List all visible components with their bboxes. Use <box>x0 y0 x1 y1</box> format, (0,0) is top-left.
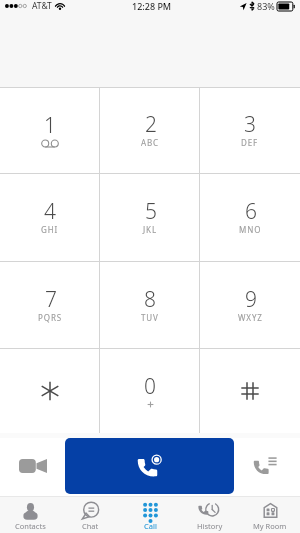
staticText: MNO <box>239 224 262 235</box>
button[interactable]: 3 <box>200 87 300 173</box>
button[interactable]: Contacts <box>0 497 60 533</box>
button[interactable]: Call <box>120 497 180 533</box>
staticText: JKL <box>143 224 158 235</box>
staticText: TUV <box>141 312 159 323</box>
button[interactable]: 4 <box>0 173 100 261</box>
button[interactable]: Call <box>65 438 234 494</box>
staticText: 12:28 PM <box>132 0 172 12</box>
button[interactable]: 2 <box>100 87 200 173</box>
button[interactable]: Chat <box>60 497 120 533</box>
staticText: History <box>197 521 223 531</box>
staticText: 4 <box>44 197 56 226</box>
staticText: Contacts <box>15 521 46 531</box>
button[interactable]: 9 <box>200 261 300 348</box>
staticText: 6 <box>245 197 257 226</box>
button[interactable]: 7 <box>0 261 100 348</box>
staticText: WXYZ <box>238 312 263 323</box>
staticText: PQRS <box>38 312 63 323</box>
button[interactable]: 5 <box>100 173 200 261</box>
staticText: 5 <box>145 197 157 226</box>
staticText: Chat <box>82 521 99 531</box>
button[interactable]: 8 <box>100 261 200 348</box>
staticText: My Room <box>253 521 287 531</box>
staticText: 1 <box>44 111 56 140</box>
staticText: DEF <box>241 137 259 148</box>
staticText: 8 <box>144 285 156 314</box>
button[interactable]: Call options <box>234 438 300 494</box>
staticText: 2 <box>145 110 157 139</box>
staticText: ABC <box>141 137 160 148</box>
staticText: 7 <box>45 285 57 314</box>
button[interactable]: 1 <box>0 87 100 173</box>
button[interactable]: My Room <box>240 497 300 533</box>
staticText: GHI <box>41 224 59 235</box>
button[interactable]: Video call <box>0 438 65 494</box>
button[interactable] <box>0 348 100 433</box>
staticText: 9 <box>245 285 257 314</box>
button[interactable] <box>200 348 300 433</box>
button[interactable]: History <box>180 497 240 533</box>
staticText: AT&T <box>32 0 52 12</box>
staticText: 0 <box>144 372 156 401</box>
staticText: 3 <box>244 110 256 139</box>
button[interactable]: 6 <box>200 173 300 261</box>
staticText: 83% <box>257 0 275 12</box>
button[interactable]: 0 <box>100 348 200 433</box>
staticText: Call <box>144 521 157 531</box>
